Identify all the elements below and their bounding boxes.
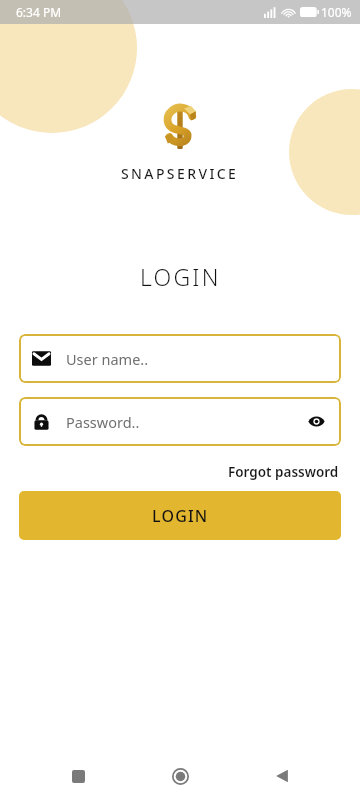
button[interactable]: Back [258, 752, 306, 800]
staticText: SNAPSERVICE [121, 164, 239, 183]
button[interactable]: Password.. [19, 397, 341, 446]
staticText: User name.. [66, 349, 328, 369]
button[interactable]: Home [156, 752, 204, 800]
staticText: LOGIN [140, 261, 221, 292]
button[interactable]: Forgot password [226, 460, 341, 484]
staticText: Password.. [66, 412, 305, 432]
staticText: Forgot password [228, 463, 339, 481]
staticText: LOGIN [152, 505, 209, 527]
staticText: 6:34 PM [16, 4, 62, 20]
button[interactable]: Recent apps [54, 752, 102, 800]
button[interactable]: LOGIN [19, 491, 341, 540]
staticText: 100% [321, 4, 352, 20]
button[interactable]: Show password [305, 410, 328, 433]
button[interactable]: User name.. [19, 334, 341, 383]
